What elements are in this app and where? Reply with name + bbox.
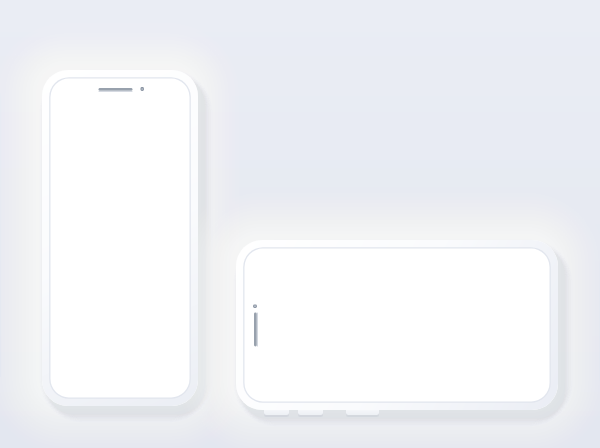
button[interactable]: Landscape phone mockup [236, 240, 558, 410]
button[interactable]: Portrait phone mockup [42, 70, 198, 406]
